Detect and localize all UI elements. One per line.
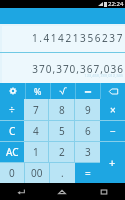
- button[interactable]: 9: [75, 99, 100, 120]
- staticText: 123,456,789,012,345: [84, 73, 123, 78]
- button[interactable]: +: [100, 142, 125, 183]
- staticText: 8: [59, 103, 65, 117]
- button[interactable]: 7: [24, 99, 48, 120]
- staticText: %: [34, 85, 42, 97]
- button[interactable]: .: [50, 163, 75, 183]
- button[interactable]: Percent: [26, 83, 50, 99]
- staticText: −: [110, 124, 116, 138]
- button[interactable]: Recents: [83, 183, 125, 200]
- staticText: C: [9, 124, 16, 138]
- button[interactable]: Settings: [0, 83, 25, 99]
- staticText: 7: [33, 103, 39, 117]
- button[interactable]: −: [100, 121, 125, 141]
- button[interactable]: 0: [0, 163, 24, 183]
- button[interactable]: Plus minus: [76, 83, 100, 99]
- staticText: 0: [9, 166, 15, 180]
- button[interactable]: 1: [24, 142, 48, 162]
- button[interactable]: =: [75, 163, 100, 183]
- staticText: AC: [6, 145, 19, 159]
- button[interactable]: ×: [100, 99, 125, 120]
- button[interactable]: 00: [25, 163, 49, 183]
- staticText: ×: [110, 103, 116, 117]
- button[interactable]: 6: [75, 121, 100, 141]
- button[interactable]: Square root: [51, 83, 75, 99]
- staticText: +: [109, 155, 116, 170]
- staticText: 6: [85, 124, 91, 138]
- button[interactable]: 4: [24, 121, 48, 141]
- button[interactable]: 8: [49, 99, 74, 120]
- staticText: 1: [33, 145, 39, 159]
- staticText: 1.41421356237: [31, 31, 124, 45]
- staticText: 3: [85, 145, 91, 159]
- button[interactable]: C: [0, 121, 24, 141]
- button[interactable]: AC: [0, 142, 24, 162]
- staticText: 4: [33, 124, 39, 138]
- staticText: 9: [85, 103, 91, 117]
- button[interactable]: 5: [49, 121, 74, 141]
- button[interactable]: 2: [49, 142, 74, 162]
- staticText: =: [85, 166, 91, 180]
- button[interactable]: Backspace: [101, 83, 125, 99]
- staticText: 00: [31, 166, 43, 180]
- button[interactable]: Home: [41, 183, 83, 200]
- button[interactable]: ÷: [0, 99, 24, 120]
- staticText: 22:24: [108, 0, 124, 8]
- staticText: 370,370,367,036: [32, 62, 124, 76]
- staticText: ÷: [9, 103, 15, 117]
- staticText: .: [61, 166, 64, 180]
- staticText: 2: [59, 145, 65, 159]
- button[interactable]: Back: [0, 183, 41, 200]
- staticText: 5: [59, 124, 65, 138]
- button[interactable]: 3: [75, 142, 100, 162]
